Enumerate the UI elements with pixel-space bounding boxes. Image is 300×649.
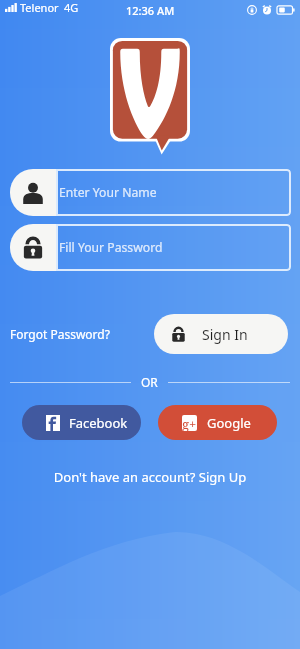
staticText: 12:36 AM: [126, 3, 175, 18]
staticText: Enter Your Name: [59, 184, 157, 201]
button[interactable]: Enter Your Name: [0, 169, 300, 216]
other: Rotation lock: [247, 5, 257, 15]
button[interactable]: Forgot Password?: [10, 326, 110, 342]
button[interactable]: Facebook: [22, 405, 141, 440]
staticText: OR: [141, 374, 158, 390]
staticText: 4G: [64, 0, 79, 15]
other: Battery: [277, 5, 295, 15]
staticText: Facebook: [69, 414, 128, 432]
other: Alarm: [262, 5, 272, 15]
staticText: Google: [207, 414, 251, 432]
staticText: Sign In: [202, 325, 248, 344]
button[interactable]: Fill Your Password: [0, 224, 300, 271]
button[interactable]: Sign In: [154, 314, 288, 354]
button[interactable]: g+: [158, 405, 277, 440]
staticText: Telenor: [20, 0, 59, 15]
staticText: g+: [182, 415, 197, 431]
button[interactable]: Don't have an account? Sign Up: [0, 468, 300, 486]
staticText: Fill Your Password: [59, 239, 163, 256]
